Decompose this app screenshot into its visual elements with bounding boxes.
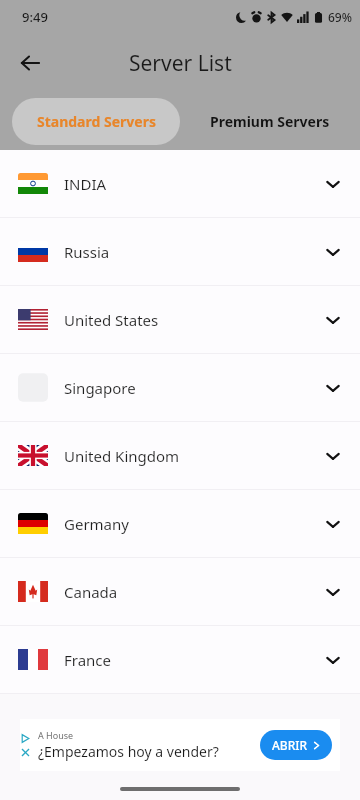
staticText: Russia (64, 242, 110, 262)
staticText: ABRIR (272, 737, 308, 753)
button[interactable]: Back (8, 41, 52, 85)
staticText: Server List (129, 49, 232, 78)
button[interactable]: Singapore (0, 354, 360, 421)
button[interactable]: Russia (0, 218, 360, 285)
button[interactable]: Germany (0, 490, 360, 557)
staticText: Premium Servers (210, 112, 330, 131)
staticText: 9:49 (22, 8, 48, 26)
staticText: ¿Empezamos hoy a vender? (38, 742, 219, 761)
staticText: Germany (64, 514, 129, 534)
button[interactable]: United Kingdom (0, 422, 360, 489)
button[interactable]: Canada (0, 558, 360, 625)
staticText: Canada (64, 582, 118, 602)
staticText: Standard Servers (37, 112, 156, 131)
button[interactable]: Standard Servers (12, 98, 180, 145)
staticText: INDIA (64, 174, 107, 194)
staticText: United States (64, 310, 159, 330)
button[interactable]: United States (0, 286, 360, 353)
staticText: United Kingdom (64, 446, 180, 466)
button[interactable]: France (0, 626, 360, 693)
button[interactable]: Premium Servers (180, 92, 360, 150)
button[interactable]: ABRIR (260, 730, 332, 760)
staticText: France (64, 650, 112, 670)
staticText: Singapore (64, 378, 136, 398)
button[interactable]: A House (20, 719, 340, 771)
staticText: 69% (328, 9, 352, 25)
button[interactable]: INDIA (0, 150, 360, 217)
staticText: A House (38, 729, 74, 741)
